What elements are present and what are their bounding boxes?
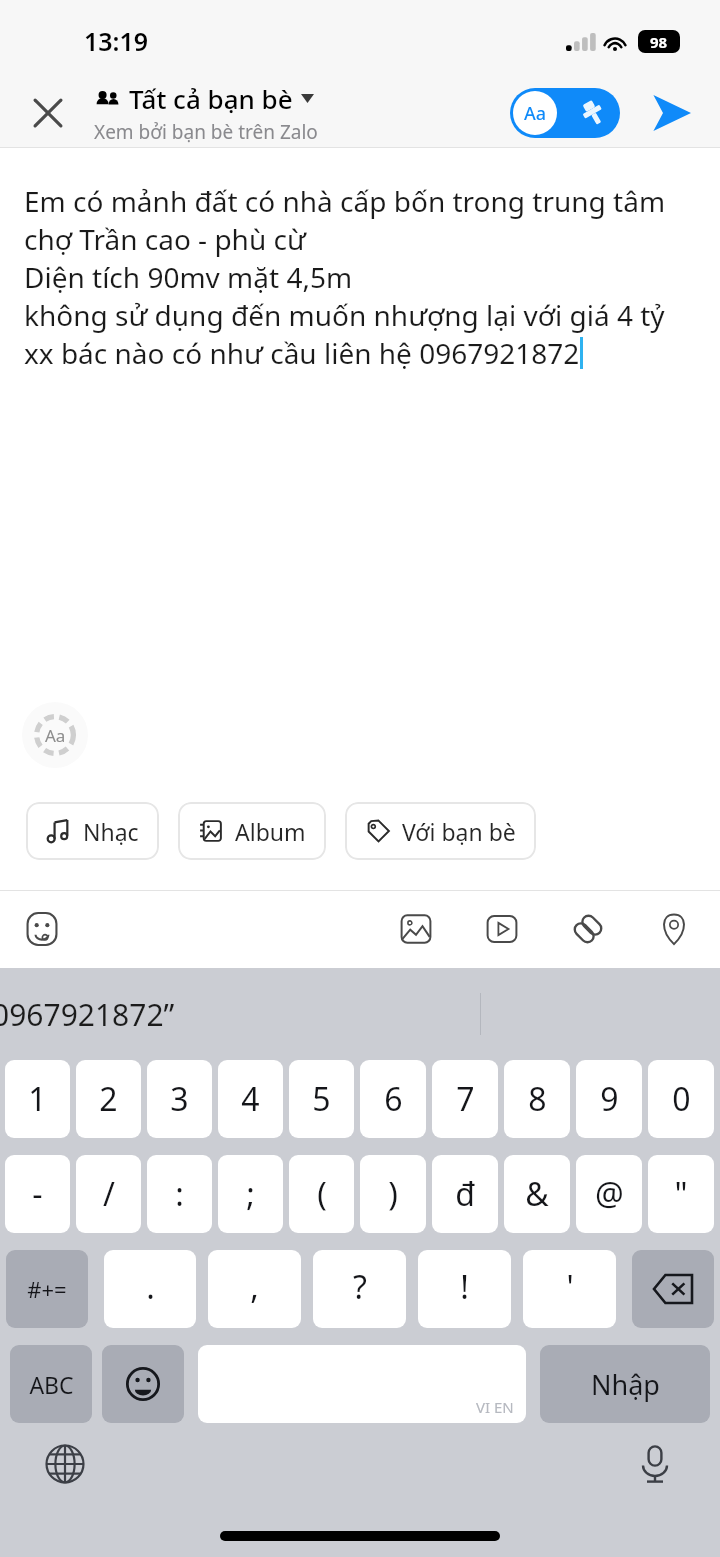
button[interactable]: Tất cả bạn bè: [94, 81, 314, 116]
button[interactable]: Emoji: [102, 1345, 184, 1423]
staticText: (: [317, 1172, 327, 1216]
staticText: 98: [650, 32, 668, 52]
button[interactable]: 7: [432, 1060, 498, 1138]
button[interactable]: 0: [648, 1060, 714, 1138]
button[interactable]: ;: [218, 1155, 283, 1233]
staticText: #+=: [27, 1274, 67, 1304]
button[interactable]: ?: [313, 1250, 406, 1328]
staticText: xx bác nào có như cầu liên hệ 0967921872: [24, 334, 580, 372]
staticText: Diện tích 90mv mặt 4,5m: [24, 258, 353, 296]
button[interactable]: 6: [360, 1060, 426, 1138]
button[interactable]: ": [648, 1155, 714, 1233]
button[interactable]: @: [576, 1155, 642, 1233]
staticText: 7: [456, 1077, 475, 1121]
button[interactable]: Nhập: [540, 1345, 710, 1423]
button[interactable]: /: [76, 1155, 141, 1233]
staticText: 13:19: [84, 24, 149, 58]
button[interactable]: Close: [14, 79, 82, 147]
staticText: Aa: [524, 101, 547, 126]
button[interactable]: ': [523, 1250, 616, 1328]
button[interactable]: ): [360, 1155, 426, 1233]
button[interactable]: Album: [178, 802, 326, 860]
button[interactable]: #+=: [6, 1250, 88, 1328]
button[interactable]: 3: [147, 1060, 212, 1138]
staticText: 0967921872”: [0, 994, 175, 1035]
staticText: 9: [600, 1077, 619, 1121]
button[interactable]: Voice input: [628, 1437, 682, 1491]
button[interactable]: Video: [474, 901, 530, 957]
staticText: 3: [170, 1077, 189, 1121]
staticText: ): [388, 1172, 398, 1216]
button[interactable]: Photo: [388, 901, 444, 957]
staticText: ,: [250, 1265, 259, 1309]
staticText: 2: [99, 1077, 118, 1121]
button[interactable]: Với bạn bè: [345, 802, 536, 860]
button[interactable]: đ: [432, 1155, 498, 1233]
button[interactable]: ABC: [10, 1345, 92, 1423]
staticText: Với bạn bè: [402, 816, 516, 847]
button[interactable]: Text style toggle: [510, 88, 620, 138]
button[interactable]: :: [147, 1155, 212, 1233]
button[interactable]: 8: [504, 1060, 570, 1138]
staticText: 0: [672, 1077, 691, 1121]
button[interactable]: 5: [289, 1060, 354, 1138]
button[interactable]: ,: [208, 1250, 301, 1328]
button[interactable]: 1: [5, 1060, 70, 1138]
button[interactable]: !: [418, 1250, 511, 1328]
staticText: không sử dụng đến muốn nhượng lại với gi…: [24, 296, 665, 334]
staticText: :: [175, 1172, 184, 1216]
button[interactable]: 2: [76, 1060, 141, 1138]
staticText: Nhạc: [83, 816, 139, 847]
button[interactable]: Text format: [22, 702, 88, 768]
staticText: .: [146, 1265, 155, 1309]
staticText: Aa: [45, 724, 66, 747]
staticText: 6: [384, 1077, 403, 1121]
staticText: ;: [246, 1172, 255, 1216]
button[interactable]: &: [504, 1155, 570, 1233]
staticText: 4: [241, 1077, 260, 1121]
button[interactable]: Backspace: [632, 1250, 714, 1328]
button[interactable]: Space: [198, 1345, 526, 1423]
staticText: 8: [528, 1077, 547, 1121]
button[interactable]: 4: [218, 1060, 283, 1138]
staticText: -: [32, 1172, 43, 1216]
button[interactable]: Sticker: [14, 901, 70, 957]
button[interactable]: (: [289, 1155, 354, 1233]
staticText: ': [566, 1265, 574, 1309]
staticText: Xem bởi bạn bè trên Zalo: [94, 119, 318, 145]
staticText: Tất cả bạn bè: [129, 81, 293, 116]
staticText: Album: [235, 816, 306, 847]
staticText: @: [595, 1172, 624, 1216]
button[interactable]: Change language: [38, 1437, 92, 1491]
staticText: Em có mảnh đất có nhà cấp bốn trong trun…: [24, 182, 666, 220]
staticText: ABC: [29, 1369, 74, 1400]
staticText: &: [525, 1172, 549, 1216]
staticText: 5: [312, 1077, 331, 1121]
staticText: đ: [455, 1172, 475, 1216]
staticText: ": [674, 1172, 688, 1216]
button[interactable]: .: [104, 1250, 196, 1328]
staticText: ?: [353, 1265, 367, 1309]
staticText: 1: [28, 1077, 47, 1121]
button[interactable]: 9: [576, 1060, 642, 1138]
staticText: Nhập: [591, 1366, 660, 1403]
button[interactable]: Nhạc: [26, 802, 159, 860]
staticText: !: [460, 1265, 469, 1309]
button[interactable]: Link: [560, 901, 616, 957]
staticText: VI EN: [476, 1397, 514, 1417]
staticText: /: [103, 1172, 115, 1216]
button[interactable]: Location: [646, 901, 702, 957]
button[interactable]: -: [5, 1155, 70, 1233]
staticText: chợ Trần cao - phù cừ: [24, 220, 306, 258]
button[interactable]: Send: [644, 86, 698, 140]
